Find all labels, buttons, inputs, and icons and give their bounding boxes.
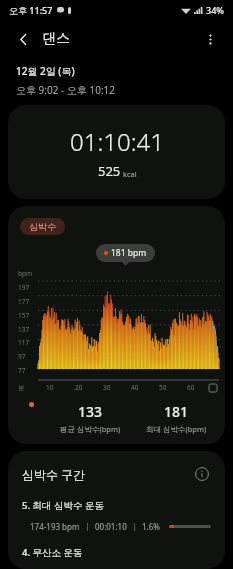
staticText: 40: [131, 383, 139, 392]
staticText: 157: [18, 311, 30, 320]
staticText: 평균 심박수(bpm): [60, 424, 121, 434]
button[interactable]: 심박수: [8, 206, 225, 444]
staticText: 심박수 구간: [22, 466, 86, 482]
staticText: 177: [18, 297, 30, 306]
staticText: 댄스: [42, 30, 70, 48]
staticText: bpm: [18, 269, 33, 278]
staticText: 30: [103, 383, 111, 392]
staticText: 50: [159, 383, 167, 392]
staticText: 137: [18, 325, 30, 334]
staticText: kcal: [123, 169, 137, 179]
staticText: 133: [78, 402, 103, 421]
staticText: 174-193 bpm: [30, 521, 80, 532]
staticText: 오후 9:02 - 오후 10:12: [16, 83, 116, 97]
staticText: 77: [18, 366, 26, 375]
staticText: 197: [18, 283, 30, 292]
staticText: 오후 11:57: [9, 4, 53, 16]
staticText: 525: [98, 162, 121, 180]
staticText: 최대 심박수(bpm): [146, 424, 207, 434]
staticText: 분: [18, 384, 25, 392]
staticText: 4. 무산소 운동: [22, 546, 83, 559]
staticText: 181: [164, 402, 189, 421]
button[interactable]: More options: [197, 26, 223, 52]
button[interactable]: Back: [10, 26, 36, 52]
staticText: 97: [18, 352, 26, 361]
staticText: 181 bpm: [111, 247, 147, 259]
staticText: 5. 최대 심박수 운동: [22, 499, 104, 512]
staticText: 00:01:10: [95, 521, 127, 532]
button[interactable]: 01:10:41: [8, 105, 225, 199]
button[interactable]: Information: [193, 465, 211, 483]
staticText: 20: [75, 383, 83, 392]
staticText: 12월 2일 (목): [16, 64, 75, 78]
staticText: 1.6%: [142, 521, 160, 532]
staticText: 117: [18, 338, 30, 347]
staticText: 60: [187, 383, 195, 392]
button[interactable]: 심박수: [20, 218, 65, 235]
staticText: 34%: [206, 4, 224, 16]
staticText: 01:10:41: [70, 125, 164, 158]
button[interactable]: 심박수 구간: [8, 451, 225, 569]
staticText: 심박수: [29, 221, 56, 232]
staticText: 10: [46, 383, 54, 392]
